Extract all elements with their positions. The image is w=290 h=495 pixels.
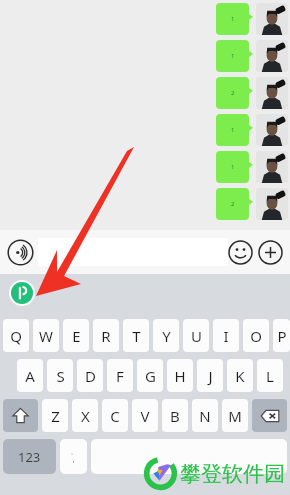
button[interactable]: W: [33, 319, 59, 352]
button[interactable]: D: [77, 359, 103, 392]
button[interactable]: C: [102, 399, 128, 432]
staticText: D: [85, 366, 96, 386]
button[interactable]: I: [213, 319, 239, 352]
button[interactable]: A: [17, 359, 43, 392]
staticText: Z: [51, 406, 60, 426]
button[interactable]: Voice input: [7, 239, 34, 266]
staticText: F: [116, 366, 124, 386]
button[interactable]: Assistant: [9, 280, 35, 306]
button[interactable]: J: [197, 359, 223, 392]
button[interactable]: Emoji: [228, 240, 253, 265]
button[interactable]: More: [258, 240, 283, 265]
staticText: 2: [231, 89, 235, 97]
staticText: B: [170, 406, 180, 426]
staticText: C: [110, 406, 120, 426]
button[interactable]: K: [227, 359, 253, 392]
staticText: P: [277, 326, 287, 346]
button[interactable]: Avatar: [256, 188, 288, 220]
staticText: M: [228, 406, 242, 426]
staticText: A: [25, 366, 35, 386]
staticText: O: [250, 326, 262, 346]
staticText: ，: [70, 455, 77, 464]
staticText: 1: [231, 15, 235, 23]
button[interactable]: 1: [216, 3, 249, 35]
staticText: L: [266, 366, 274, 386]
staticText: U: [191, 326, 202, 346]
staticText: R: [101, 326, 111, 346]
staticText: K: [235, 366, 245, 386]
staticText: 1: [231, 52, 235, 60]
button[interactable]: U: [183, 319, 209, 352]
button[interactable]: Q: [3, 319, 29, 352]
button[interactable]: [91, 439, 287, 474]
staticText: 123: [18, 448, 41, 466]
staticText: E: [72, 326, 81, 346]
button[interactable]: G: [137, 359, 163, 392]
button[interactable]: 123: [3, 439, 56, 474]
button[interactable]: B: [162, 399, 188, 432]
button[interactable]: F: [107, 359, 133, 392]
button[interactable]: Avatar: [256, 77, 288, 109]
staticText: N: [199, 406, 211, 426]
button[interactable]: X: [72, 399, 98, 432]
button[interactable]: Y: [153, 319, 179, 352]
button[interactable]: 。: [60, 439, 87, 474]
staticText: G: [145, 366, 156, 386]
staticText: T: [132, 326, 141, 346]
staticText: 1: [231, 126, 235, 134]
button[interactable]: 1: [216, 114, 249, 146]
button[interactable]: N: [192, 399, 218, 432]
staticText: 攀登软件园: [180, 461, 285, 487]
button[interactable]: S: [47, 359, 73, 392]
button[interactable]: M: [222, 399, 248, 432]
button[interactable]: P: [273, 319, 290, 352]
button[interactable]: H: [167, 359, 193, 392]
staticText: W: [39, 326, 53, 346]
button[interactable]: Avatar: [256, 40, 288, 72]
button[interactable]: O: [243, 319, 269, 352]
button[interactable]: Z: [42, 399, 68, 432]
staticText: J: [208, 366, 213, 386]
button[interactable]: [38, 238, 228, 266]
button[interactable]: 1: [216, 40, 249, 72]
staticText: X: [81, 406, 90, 426]
staticText: I: [223, 326, 229, 346]
staticText: 1: [231, 163, 235, 171]
button[interactable]: Shift: [3, 399, 38, 432]
button[interactable]: Avatar: [256, 114, 288, 146]
button[interactable]: 2: [216, 188, 249, 220]
button[interactable]: T: [123, 319, 149, 352]
button[interactable]: Avatar: [256, 3, 288, 35]
button[interactable]: 2: [216, 77, 249, 109]
staticText: H: [174, 366, 186, 386]
staticText: S: [56, 366, 65, 386]
staticText: 。: [71, 449, 76, 455]
staticText: Q: [10, 326, 22, 346]
staticText: Y: [162, 326, 171, 346]
button[interactable]: R: [93, 319, 119, 352]
button[interactable]: Avatar: [256, 151, 288, 183]
button[interactable]: V: [132, 399, 158, 432]
staticText: V: [140, 406, 150, 426]
button[interactable]: L: [257, 359, 283, 392]
button[interactable]: Backspace: [252, 399, 287, 432]
staticText: 2: [231, 200, 235, 208]
button[interactable]: E: [63, 319, 89, 352]
button[interactable]: 1: [216, 151, 249, 183]
